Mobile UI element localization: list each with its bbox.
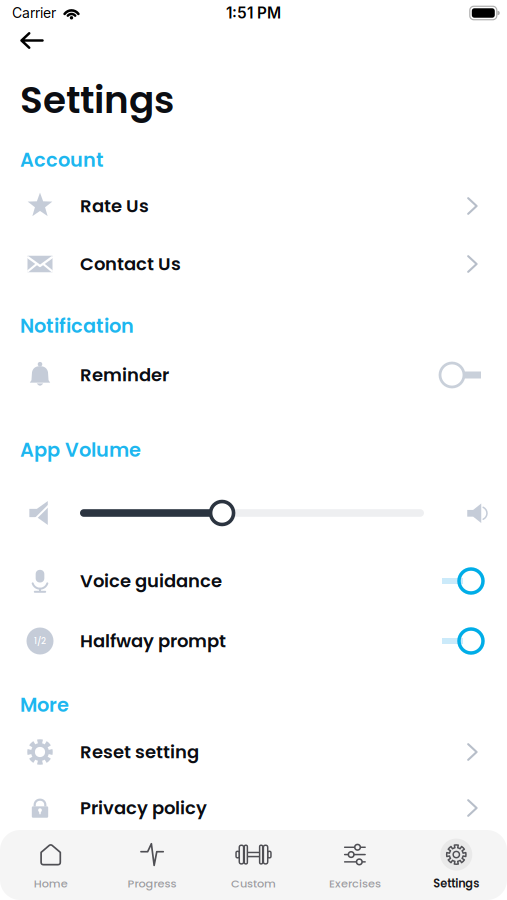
button[interactable]: Back	[10, 22, 54, 59]
staticText: Halfway prompt	[80, 628, 226, 654]
button[interactable]: Voice guidance	[0, 552, 507, 610]
staticText: Custom	[231, 876, 276, 891]
staticText: Reminder	[80, 362, 169, 388]
button[interactable]: Reminder	[0, 346, 507, 404]
staticText: Account	[20, 146, 104, 174]
staticText: 1/2	[34, 635, 46, 647]
button[interactable]: Rate Us	[0, 177, 507, 235]
staticText: Progress	[128, 876, 177, 891]
button[interactable]: Reset setting	[0, 724, 507, 780]
staticText: Settings	[20, 74, 174, 126]
staticText: Exercises	[329, 876, 381, 891]
staticText: Carrier	[12, 4, 56, 21]
staticText: Reset setting	[80, 739, 199, 765]
staticText: Voice guidance	[80, 568, 222, 594]
staticText: App Volume	[20, 436, 141, 464]
button[interactable]: Contact Us	[0, 235, 507, 293]
staticText: 1:51 PM	[226, 4, 281, 22]
button[interactable]: 1/2	[0, 612, 507, 670]
button[interactable]: Custom	[203, 830, 304, 900]
button[interactable]: Privacy policy	[0, 780, 507, 836]
staticText: More	[20, 691, 69, 719]
staticText: Notification	[20, 312, 134, 340]
staticText: Rate Us	[80, 193, 149, 219]
button[interactable]: Home	[0, 830, 101, 900]
staticText: Home	[34, 876, 68, 891]
staticText: Privacy policy	[80, 795, 207, 821]
staticText: Settings	[433, 876, 479, 891]
button[interactable]: Progress	[101, 830, 203, 900]
button[interactable]: Settings	[406, 830, 507, 900]
staticText: Contact Us	[80, 251, 181, 277]
button[interactable]: Exercises	[304, 830, 406, 900]
